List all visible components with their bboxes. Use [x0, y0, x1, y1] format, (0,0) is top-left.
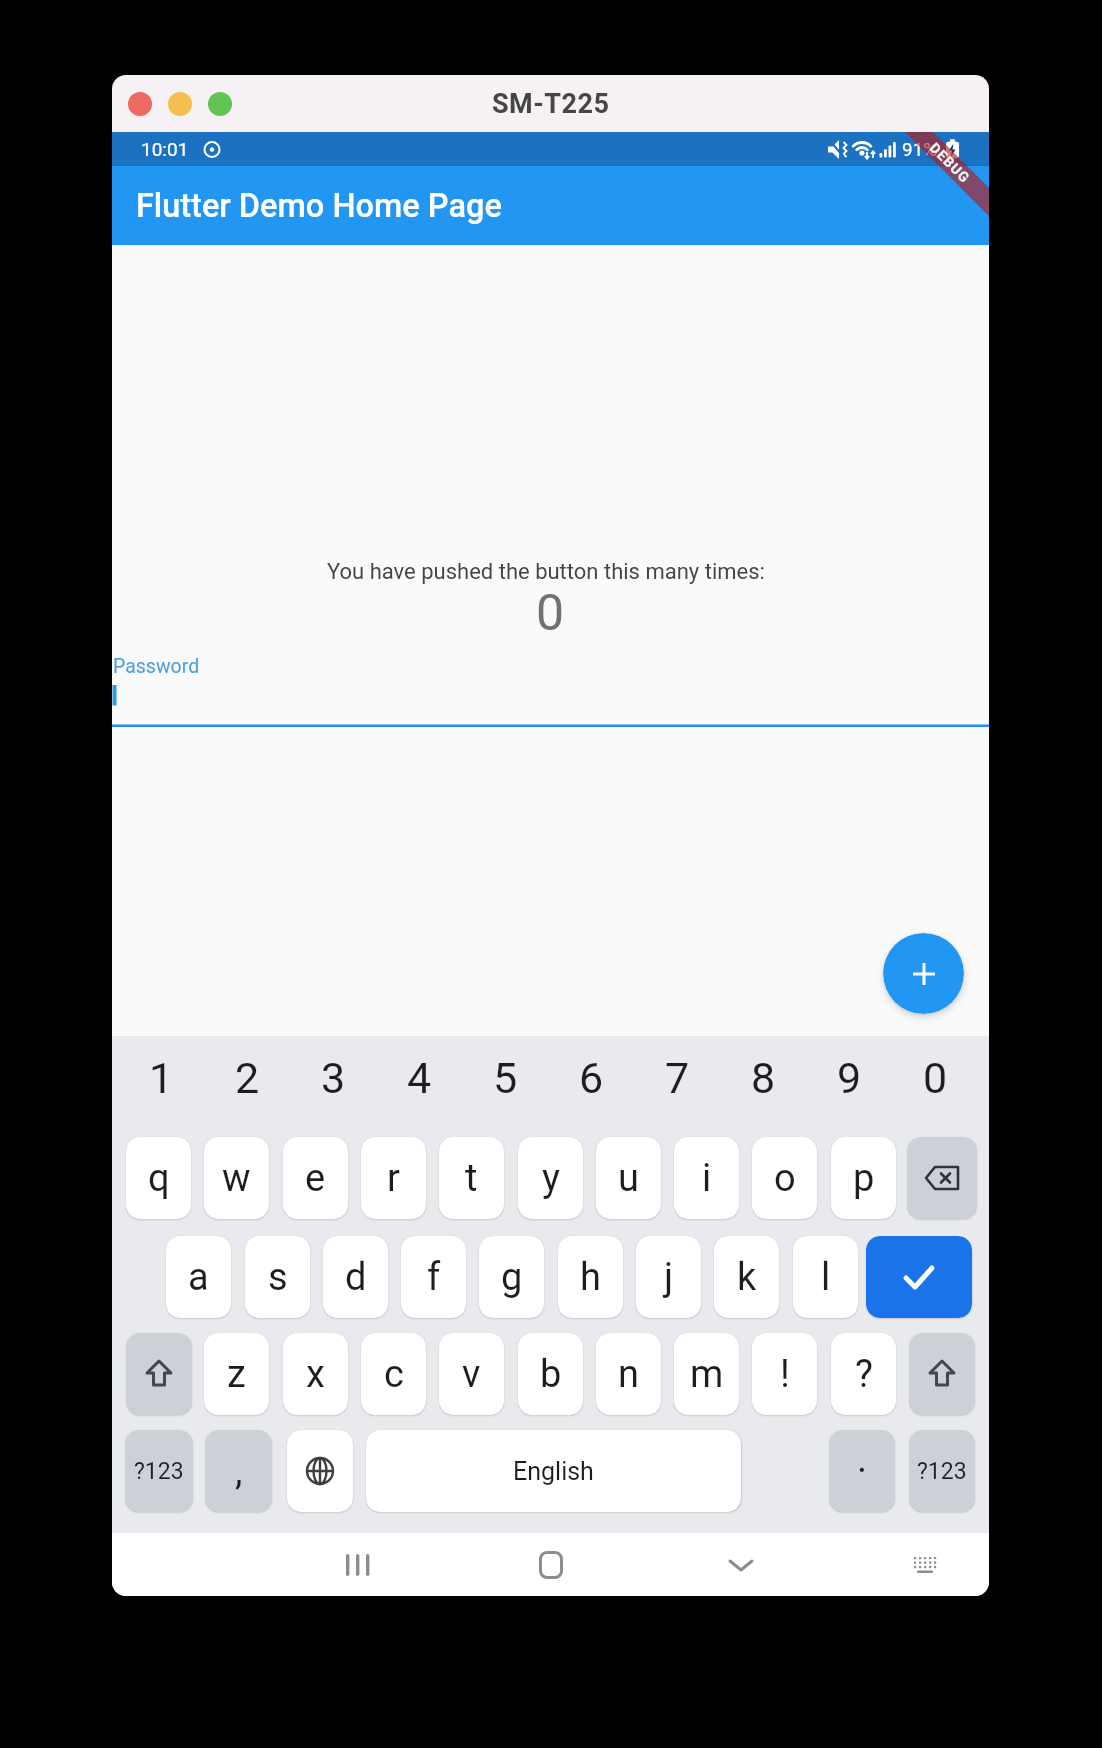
button[interactable]: h — [558, 1236, 623, 1318]
button[interactable]: r — [361, 1137, 426, 1219]
staticText: 91% — [902, 138, 938, 160]
button[interactable] — [895, 1533, 955, 1596]
button[interactable]: s — [245, 1236, 310, 1318]
staticText: English — [513, 1457, 594, 1486]
staticText: o — [774, 1156, 796, 1201]
button[interactable]: i — [674, 1137, 739, 1219]
staticText: f — [427, 1255, 441, 1300]
button[interactable]: t — [439, 1137, 504, 1219]
button[interactable]: u — [596, 1137, 661, 1219]
button[interactable]: ?123 — [909, 1430, 975, 1512]
staticText: , — [235, 1449, 243, 1494]
staticText: l — [821, 1255, 831, 1300]
staticText: y — [542, 1156, 560, 1201]
staticText: e — [305, 1156, 326, 1201]
button[interactable]: o — [752, 1137, 817, 1219]
staticText: p — [853, 1156, 875, 1201]
button[interactable]: b — [518, 1333, 583, 1415]
button[interactable]: d — [323, 1236, 388, 1318]
staticText: DEBUG — [927, 140, 973, 186]
button[interactable]: c — [361, 1333, 426, 1415]
staticText: 8 — [751, 1053, 776, 1103]
staticText: Flutter Demo Home Page — [136, 187, 502, 225]
staticText: h — [580, 1255, 601, 1300]
button[interactable]: n — [596, 1333, 661, 1415]
button[interactable]: w — [204, 1137, 269, 1219]
staticText: ?123 — [134, 1458, 184, 1485]
button[interactable]: m — [674, 1333, 739, 1415]
button[interactable]: z — [204, 1333, 269, 1415]
button[interactable]: y — [518, 1137, 583, 1219]
button[interactable] — [883, 933, 964, 1014]
staticText: q — [148, 1156, 170, 1201]
staticText: b — [540, 1352, 562, 1397]
button[interactable]: q — [126, 1137, 191, 1219]
button[interactable] — [126, 1333, 192, 1415]
button[interactable]: x — [283, 1333, 348, 1415]
staticText: SM-T225 — [492, 88, 610, 120]
staticText: ? — [855, 1352, 873, 1397]
staticText: v — [462, 1352, 481, 1397]
button[interactable]: ? — [831, 1333, 896, 1415]
button[interactable]: , — [205, 1430, 272, 1512]
staticText: x — [306, 1352, 325, 1397]
button[interactable]: v — [439, 1333, 504, 1415]
staticText: w — [222, 1156, 251, 1201]
button[interactable]: English — [366, 1430, 741, 1512]
button[interactable]: a — [166, 1236, 231, 1318]
button[interactable] — [208, 92, 232, 116]
staticText: d — [345, 1255, 367, 1300]
button[interactable] — [521, 1533, 581, 1596]
staticText: ! — [780, 1352, 790, 1397]
staticText: 7 — [665, 1053, 690, 1103]
staticText: 0 — [536, 584, 565, 643]
staticText: 5 — [493, 1053, 518, 1103]
button[interactable]: e — [283, 1137, 348, 1219]
staticText: c — [384, 1352, 404, 1397]
staticText: 0 — [923, 1053, 948, 1103]
staticText: g — [501, 1255, 523, 1300]
staticText: i — [702, 1156, 712, 1201]
button[interactable] — [866, 1236, 972, 1318]
staticText: 6 — [579, 1053, 604, 1103]
staticText: You have pushed the button this many tim… — [327, 559, 765, 585]
button[interactable] — [907, 1137, 977, 1219]
button[interactable] — [112, 645, 989, 727]
staticText: a — [188, 1255, 209, 1300]
staticText: 3 — [321, 1053, 346, 1103]
staticText: k — [737, 1255, 757, 1300]
staticText: s — [268, 1255, 288, 1300]
button[interactable]: p — [831, 1137, 896, 1219]
button[interactable] — [128, 92, 152, 116]
staticText: u — [618, 1156, 639, 1201]
staticText: 10:01 — [141, 138, 189, 160]
staticText: 9 — [837, 1053, 862, 1103]
staticText: t — [465, 1156, 478, 1201]
button[interactable] — [168, 92, 192, 116]
button[interactable]: ! — [752, 1333, 817, 1415]
staticText: Password — [113, 655, 200, 678]
staticText: j — [664, 1255, 674, 1300]
button[interactable] — [287, 1430, 353, 1512]
button[interactable]: l — [793, 1236, 858, 1318]
button[interactable]: j — [636, 1236, 701, 1318]
staticText: m — [690, 1352, 724, 1397]
button[interactable]: k — [714, 1236, 779, 1318]
button[interactable]: g — [479, 1236, 544, 1318]
button[interactable]: ?123 — [125, 1430, 193, 1512]
staticText: n — [618, 1352, 639, 1397]
staticText: 1 — [149, 1053, 174, 1103]
staticText: z — [227, 1352, 246, 1397]
staticText: 4 — [407, 1053, 432, 1103]
button[interactable] — [711, 1533, 771, 1596]
staticText: r — [387, 1156, 400, 1201]
button[interactable] — [327, 1533, 387, 1596]
staticText: 2 — [235, 1053, 260, 1103]
staticText: · — [857, 1449, 867, 1494]
button[interactable] — [909, 1333, 975, 1415]
button[interactable]: · — [829, 1430, 895, 1512]
staticText: ?123 — [917, 1458, 967, 1485]
button[interactable]: f — [401, 1236, 466, 1318]
